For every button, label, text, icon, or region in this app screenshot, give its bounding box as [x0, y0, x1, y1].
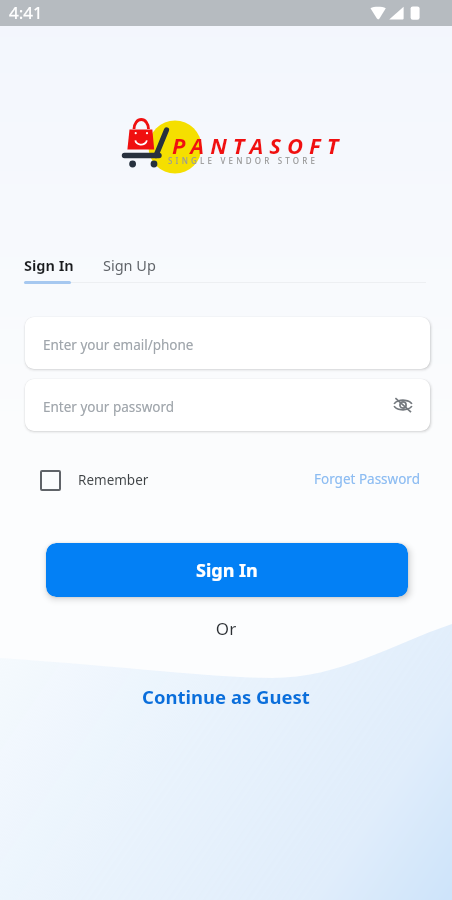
button[interactable]: Remember: [40, 466, 149, 494]
staticText: Forget Password: [314, 470, 420, 488]
button[interactable]: Show password: [390, 392, 416, 418]
staticText: 4:41: [9, 1, 43, 24]
staticText: Remember: [78, 471, 149, 489]
staticText: Enter your password: [43, 398, 175, 416]
button[interactable]: Sign Up: [102, 255, 157, 275]
button[interactable]: Enter your email/phone: [25, 317, 430, 369]
staticText: Or: [0, 617, 452, 640]
staticText: Continue as Guest: [142, 684, 310, 709]
button[interactable]: Continue as Guest: [0, 683, 452, 709]
staticText: Sign In: [24, 255, 74, 275]
staticText: PANTASOFT: [172, 130, 345, 160]
staticText: Enter your email/phone: [43, 336, 194, 354]
staticText: Sign Up: [103, 255, 156, 275]
button[interactable]: Forget Password: [314, 467, 420, 491]
staticText: SINGLE VENDOR STORE: [168, 155, 319, 166]
button[interactable]: Enter your password: [25, 379, 430, 431]
button[interactable]: Sign In: [46, 543, 408, 597]
button[interactable]: Sign In: [23, 255, 75, 275]
staticText: Sign In: [196, 558, 258, 583]
